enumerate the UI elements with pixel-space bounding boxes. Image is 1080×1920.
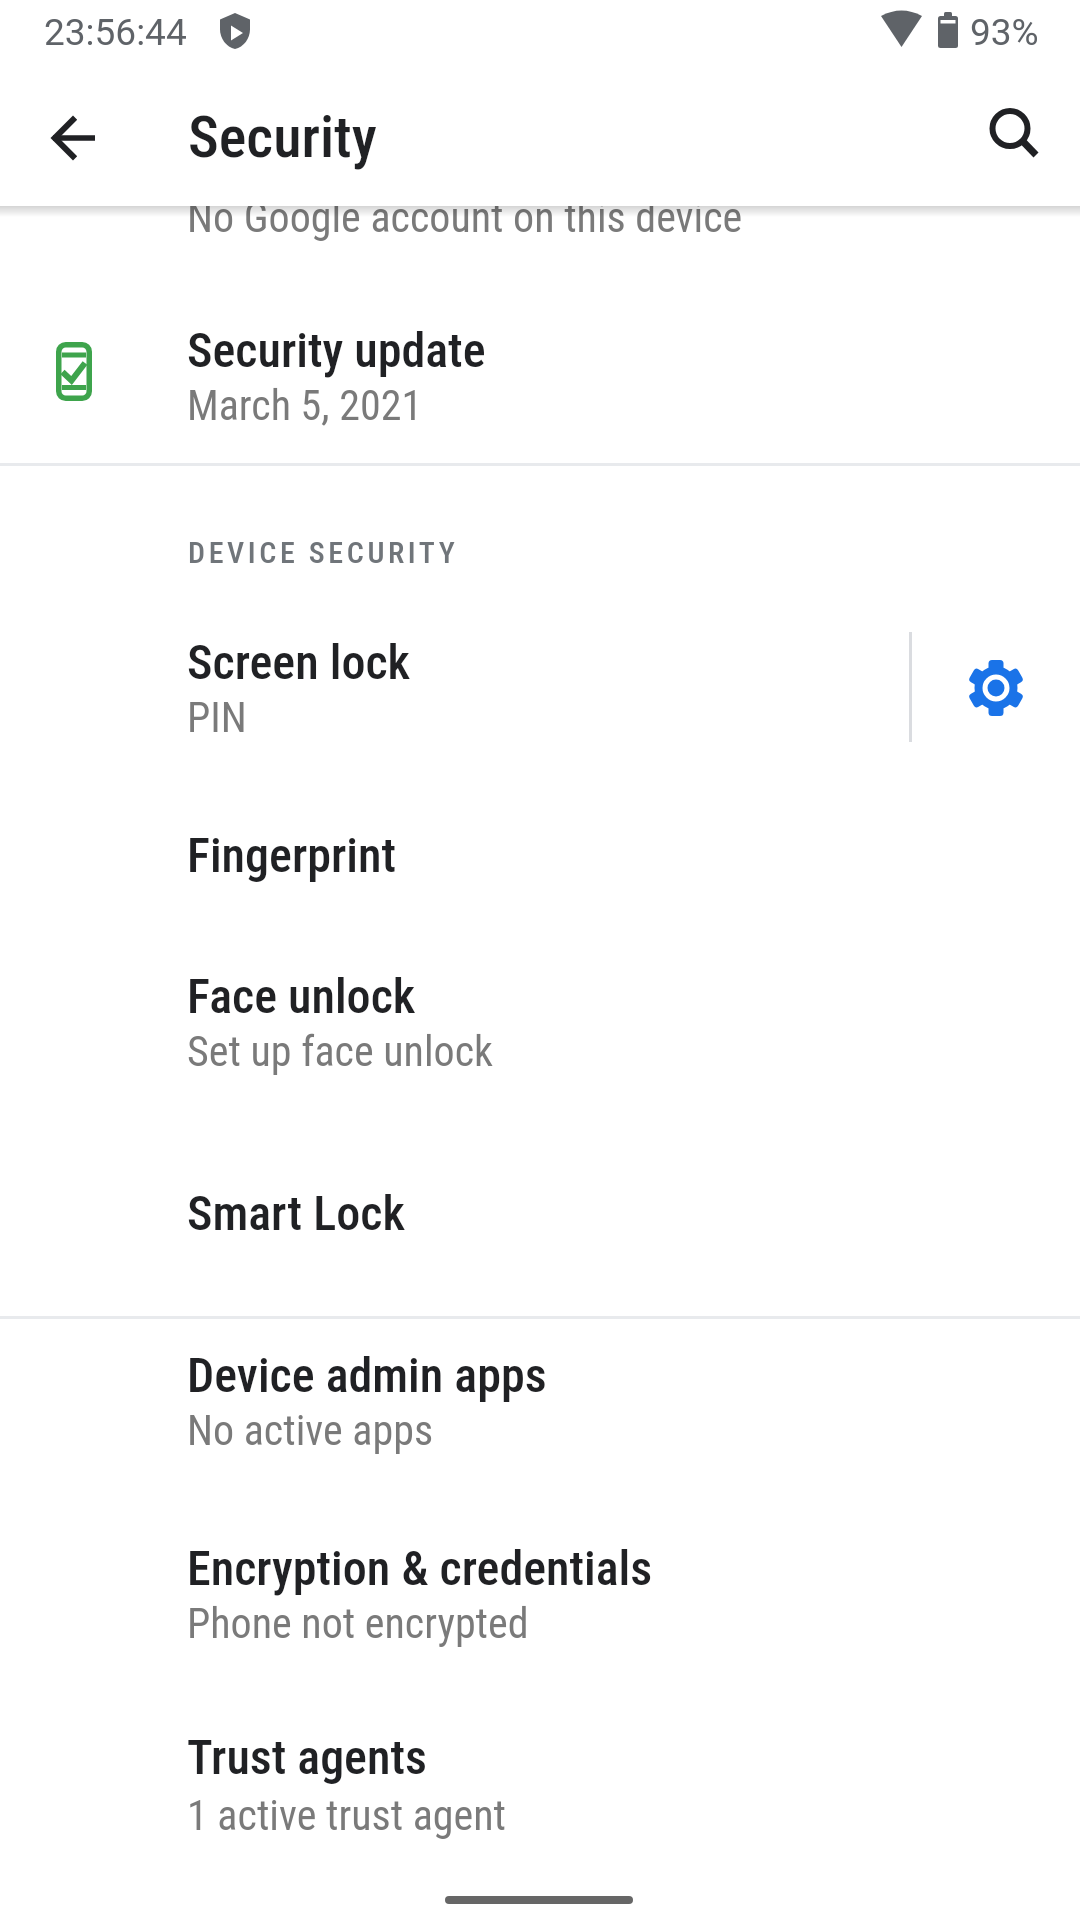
staticText: Fingerprint <box>187 827 396 883</box>
button[interactable]: Trust agents <box>0 1693 1080 1883</box>
button[interactable] <box>930 622 1062 754</box>
staticText: Security <box>188 103 377 171</box>
staticText: Screen lock <box>187 634 411 690</box>
staticText: PIN <box>187 693 247 742</box>
button[interactable]: No Google account on this device <box>0 206 1080 284</box>
button[interactable]: Fingerprint <box>0 790 1080 920</box>
staticText: Encryption & credentials <box>187 1540 653 1596</box>
staticText: Face unlock <box>187 968 416 1024</box>
button[interactable]: Device admin apps <box>0 1319 1080 1500</box>
staticText: 93% <box>970 11 1039 54</box>
staticText: Set up face unlock <box>187 1027 494 1076</box>
button[interactable] <box>445 1896 633 1904</box>
staticText: 1 active trust agent <box>187 1791 507 1840</box>
staticText: Trust agents <box>187 1729 427 1785</box>
staticText: Security update <box>187 322 486 378</box>
staticText: Smart Lock <box>187 1185 405 1241</box>
button[interactable]: Face unlock <box>0 920 1080 1120</box>
staticText: No active apps <box>187 1406 434 1455</box>
button[interactable]: Security update <box>0 284 1080 464</box>
button[interactable]: Screen lock <box>0 594 1080 790</box>
button[interactable] <box>956 76 1064 184</box>
button[interactable] <box>20 84 127 191</box>
staticText: No Google account on this device <box>187 193 743 242</box>
staticText: Phone not encrypted <box>187 1599 529 1648</box>
staticText: Device admin apps <box>187 1347 547 1403</box>
staticText: 23:56:44 <box>44 11 187 54</box>
button[interactable]: Smart Lock <box>0 1125 1080 1301</box>
button[interactable]: Encryption & credentials <box>0 1500 1080 1693</box>
staticText: DEVICE SECURITY <box>188 535 459 570</box>
staticText: March 5, 2021 <box>187 381 423 430</box>
